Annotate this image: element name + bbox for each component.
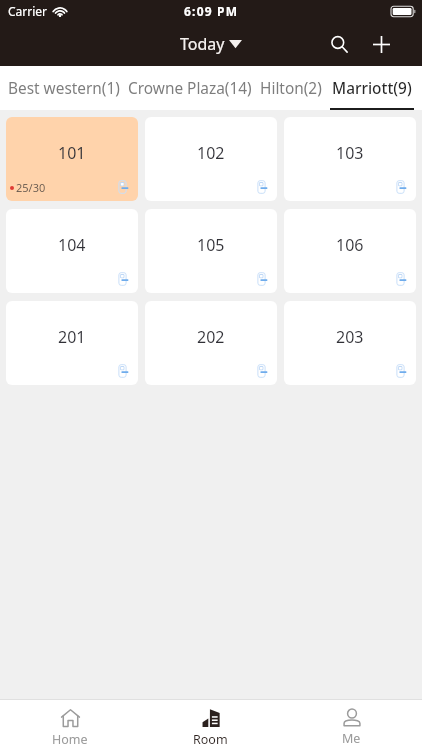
staticText: 6:09 PM xyxy=(184,3,239,19)
button[interactable]: Marriott(9) xyxy=(328,66,416,110)
staticText: Marriott(9) xyxy=(332,78,412,99)
button[interactable]: Search xyxy=(318,22,360,66)
button[interactable]: Me xyxy=(281,700,422,750)
button[interactable]: Crowne Plaza(14) xyxy=(126,66,254,110)
staticText: Best western(1) xyxy=(8,78,120,99)
staticText: 201 xyxy=(58,326,86,348)
button[interactable]: 105 xyxy=(145,209,277,293)
button[interactable]: 106 xyxy=(284,209,416,293)
staticText: Crowne Plaza(14) xyxy=(128,78,252,99)
button[interactable]: Hilton(2) xyxy=(258,66,324,110)
button[interactable]: 102 xyxy=(145,117,277,201)
button[interactable]: Today xyxy=(176,33,246,55)
staticText: Room xyxy=(193,731,228,748)
button[interactable]: Home xyxy=(0,700,140,750)
button[interactable]: Best western(1) xyxy=(6,66,122,110)
staticText: Hilton(2) xyxy=(260,78,322,99)
staticText: Home xyxy=(52,731,88,748)
staticText: 25/30 xyxy=(16,180,46,195)
staticText: 105 xyxy=(197,234,225,256)
staticText: 101 xyxy=(58,142,86,164)
button[interactable]: 203 xyxy=(284,301,416,385)
button[interactable]: 101 xyxy=(6,117,138,201)
staticText: 104 xyxy=(58,234,86,256)
staticText: 102 xyxy=(197,142,225,164)
staticText: 203 xyxy=(336,326,364,348)
staticText: 106 xyxy=(336,234,364,256)
staticText: Carrier xyxy=(8,3,48,19)
button[interactable]: 202 xyxy=(145,301,277,385)
button[interactable]: 103 xyxy=(284,117,416,201)
button[interactable]: 104 xyxy=(6,209,138,293)
button[interactable]: Add xyxy=(360,22,402,66)
staticText: Me xyxy=(342,730,361,747)
button[interactable]: 201 xyxy=(6,301,138,385)
staticText: Today xyxy=(180,33,225,55)
staticText: 202 xyxy=(197,326,225,348)
staticText: 103 xyxy=(336,142,364,164)
button[interactable]: Room xyxy=(140,700,281,750)
